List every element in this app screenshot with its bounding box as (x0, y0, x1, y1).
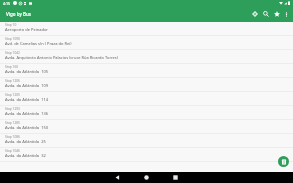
staticText: Stop 1090 (5, 37, 20, 41)
button[interactable]: More options (282, 7, 291, 21)
staticText: Stop 1046 (5, 149, 20, 153)
staticText: Stop 1042 (5, 51, 20, 55)
staticText: Stop 1206 (5, 79, 20, 83)
staticText: Aeroporto de Peinador (5, 27, 48, 32)
button[interactable]: Stop 1090 (0, 36, 293, 50)
button[interactable]: Stop 1046 (0, 148, 293, 162)
staticText: Stop 1086 (5, 135, 20, 139)
button[interactable]: Stop 10 (0, 22, 293, 36)
button[interactable]: Show buses (278, 156, 289, 167)
button[interactable]: Stop 1285 (0, 120, 293, 134)
staticText: Stop 10 (5, 23, 17, 27)
button[interactable]: Stop 1205 (0, 92, 293, 106)
staticText: Avda. Arquitecto Antonio Palacios (cruce… (5, 55, 118, 60)
staticText: Avda. da Atlántida 114 (5, 97, 49, 102)
staticText: Avda. da Atlántida 25 (5, 139, 46, 144)
staticText: Stop 1205 (5, 93, 20, 97)
staticText: Stop 160 (5, 65, 19, 69)
staticText: Avda. da Atlántida 150 (5, 125, 49, 130)
button[interactable]: Favourites (271, 7, 282, 21)
button[interactable]: Recent apps (161, 172, 190, 183)
button[interactable]: Home (132, 172, 161, 183)
staticText: Stop 1293 (5, 107, 20, 111)
staticText: Avda. da Atlántida 136 (5, 111, 49, 116)
staticText: Avda. da Atlántida 32 (5, 153, 46, 158)
button[interactable]: Stop 1206 (0, 78, 293, 92)
button[interactable]: Search (260, 7, 271, 21)
button[interactable]: My location (249, 7, 260, 21)
button[interactable]: Stop 1042 (0, 50, 293, 64)
button[interactable]: Back (103, 172, 132, 183)
staticText: Avda. da Atlántida 109 (5, 83, 49, 88)
staticText: 4:15 (3, 1, 11, 6)
staticText: Vigo by Bus (6, 11, 31, 17)
staticText: Avd. de Camelias s/n ( Praza do Rei) (5, 41, 72, 46)
button[interactable]: Stop 1086 (0, 134, 293, 148)
staticText: Avda. da Atlántida 105 (5, 69, 49, 74)
button[interactable]: Stop 1293 (0, 106, 293, 120)
button[interactable]: Stop 160 (0, 64, 293, 78)
staticText: Stop 1285 (5, 121, 20, 125)
